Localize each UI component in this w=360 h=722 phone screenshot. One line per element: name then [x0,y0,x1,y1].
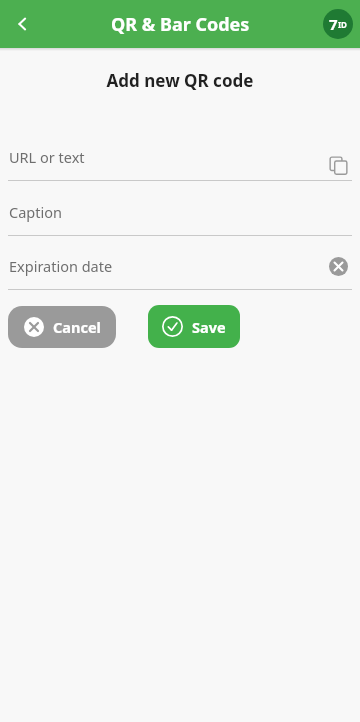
staticText: Cancel [53,317,101,337]
staticText: URL or text [9,147,85,167]
staticText: QR & Bar Codes [111,12,250,37]
staticText: ID [338,19,347,30]
button[interactable]: URL or text [0,134,360,181]
staticText: Add new QR code [0,69,360,92]
button[interactable]: Clear expiration date [325,253,351,279]
staticText: Save [192,317,226,337]
button[interactable]: Cancel [8,306,116,348]
button[interactable]: Expiration date [0,243,360,290]
button[interactable]: Save [148,305,240,348]
staticText: 7 [329,14,338,34]
staticText: Caption [9,202,62,222]
staticText: Expiration date [9,256,113,276]
button[interactable]: Caption [0,189,360,236]
button[interactable]: 7ID profile [323,9,353,39]
button[interactable]: Back [6,7,40,41]
button[interactable]: Copy [325,152,351,178]
